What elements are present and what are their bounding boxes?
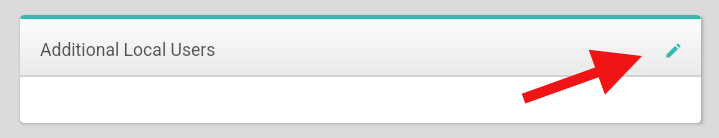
button[interactable]: Edit: [664, 41, 683, 60]
staticText: Additional Local Users: [40, 40, 216, 61]
